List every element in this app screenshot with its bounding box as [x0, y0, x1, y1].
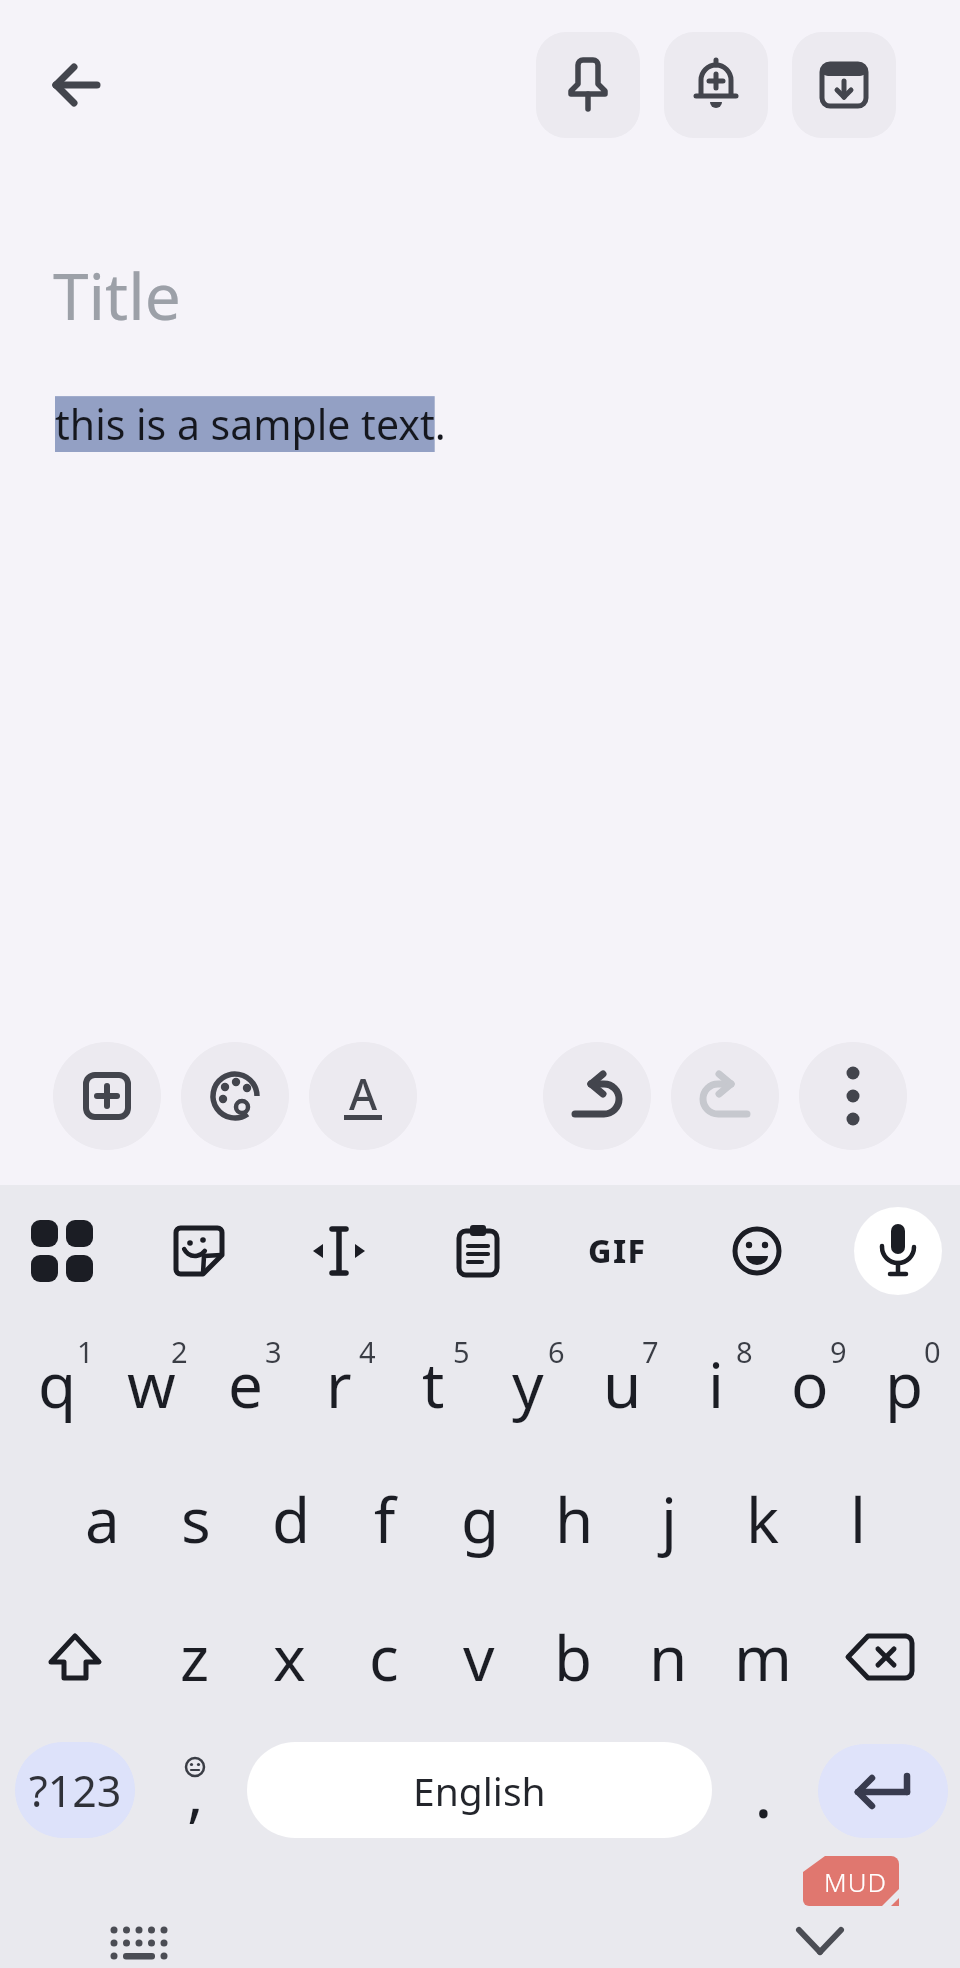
button[interactable]	[543, 1042, 651, 1150]
button[interactable]: y	[481, 1318, 575, 1450]
staticText: m	[734, 1615, 792, 1699]
button[interactable]: j	[622, 1452, 716, 1586]
button[interactable]	[799, 1042, 907, 1150]
staticText: d	[272, 1477, 311, 1561]
staticText: c	[369, 1615, 399, 1699]
staticText: 9	[830, 1332, 847, 1371]
button[interactable]: GIF	[575, 1209, 659, 1293]
button[interactable]: x	[242, 1590, 336, 1724]
button[interactable]	[671, 1042, 779, 1150]
button[interactable]	[157, 1209, 241, 1293]
staticText: .	[754, 1743, 773, 1838]
button[interactable]: o	[763, 1318, 857, 1450]
button[interactable]: ,	[148, 1742, 242, 1838]
staticText: j	[661, 1477, 677, 1561]
staticText: 5	[453, 1332, 470, 1371]
button[interactable]	[181, 1042, 289, 1150]
button[interactable]: .	[716, 1742, 810, 1838]
staticText: GIF	[588, 1229, 647, 1273]
staticText: l	[850, 1477, 866, 1561]
staticText: 8	[736, 1332, 753, 1371]
button[interactable]	[536, 32, 640, 138]
staticText: i	[708, 1342, 724, 1426]
staticText: q	[38, 1342, 77, 1426]
staticText: z	[180, 1615, 210, 1699]
staticText: this is a sample text.	[55, 396, 446, 452]
button[interactable]: b	[526, 1590, 620, 1724]
button[interactable]: a	[55, 1452, 149, 1586]
staticText: MUD	[824, 1864, 887, 1899]
button[interactable]	[818, 1744, 948, 1838]
staticText: e	[228, 1342, 263, 1426]
button[interactable]: u	[575, 1318, 669, 1450]
button[interactable]	[664, 32, 768, 138]
button[interactable]: e	[198, 1318, 292, 1450]
staticText: s	[181, 1477, 211, 1561]
staticText: u	[603, 1342, 642, 1426]
staticText: 2	[171, 1332, 188, 1371]
button[interactable]: d	[244, 1452, 338, 1586]
staticText: 4	[359, 1332, 376, 1371]
button[interactable]	[792, 32, 896, 138]
button[interactable]: m	[716, 1590, 810, 1724]
button[interactable]	[35, 1617, 115, 1697]
button[interactable]: r	[292, 1318, 386, 1450]
button[interactable]: h	[527, 1452, 621, 1586]
button[interactable]: t	[386, 1318, 480, 1450]
staticText: Title	[53, 252, 181, 339]
staticText: English	[413, 1764, 546, 1817]
staticText: a	[85, 1477, 120, 1561]
staticText: v	[463, 1615, 495, 1699]
staticText: g	[461, 1477, 500, 1561]
staticText: 7	[642, 1332, 659, 1371]
staticText: A	[349, 1064, 378, 1112]
button[interactable]	[53, 1042, 161, 1150]
button[interactable]: c	[337, 1590, 431, 1724]
staticText: 1	[77, 1332, 94, 1371]
staticText: ?123	[29, 1761, 122, 1820]
button[interactable]	[297, 1209, 381, 1293]
button[interactable]	[715, 1209, 799, 1293]
button[interactable]	[20, 1209, 104, 1293]
button[interactable]	[34, 43, 118, 127]
staticText: p	[885, 1342, 924, 1426]
button[interactable]: English	[247, 1742, 712, 1838]
staticText: b	[554, 1615, 593, 1699]
button[interactable]: f	[338, 1452, 432, 1586]
staticText: 3	[265, 1332, 282, 1371]
staticText: ,	[187, 1750, 204, 1834]
button[interactable]: p	[857, 1318, 951, 1450]
button[interactable]: l	[811, 1452, 905, 1586]
staticText: n	[649, 1615, 688, 1699]
button[interactable]	[436, 1209, 520, 1293]
button[interactable]: n	[621, 1590, 715, 1724]
staticText: r	[326, 1342, 352, 1426]
button[interactable]: A	[309, 1042, 417, 1150]
staticText: h	[555, 1477, 594, 1561]
staticText: y	[512, 1342, 544, 1426]
button[interactable]: s	[149, 1452, 243, 1586]
button[interactable]: v	[432, 1590, 526, 1724]
button[interactable]	[840, 1617, 920, 1697]
button[interactable]: i	[669, 1318, 763, 1450]
button[interactable]: g	[433, 1452, 527, 1586]
staticText: k	[746, 1477, 780, 1561]
button[interactable]	[854, 1207, 942, 1295]
staticText: w	[127, 1342, 176, 1426]
staticText: f	[374, 1477, 396, 1561]
staticText: t	[422, 1342, 445, 1426]
staticText: o	[791, 1342, 829, 1426]
button[interactable]: z	[148, 1590, 242, 1724]
staticText: x	[273, 1615, 306, 1699]
button[interactable]: w	[104, 1318, 198, 1450]
staticText: 6	[548, 1332, 565, 1371]
button[interactable]: ?123	[15, 1742, 135, 1838]
button[interactable]: q	[10, 1318, 104, 1450]
staticText: 0	[924, 1332, 941, 1371]
button[interactable]: k	[716, 1452, 810, 1586]
